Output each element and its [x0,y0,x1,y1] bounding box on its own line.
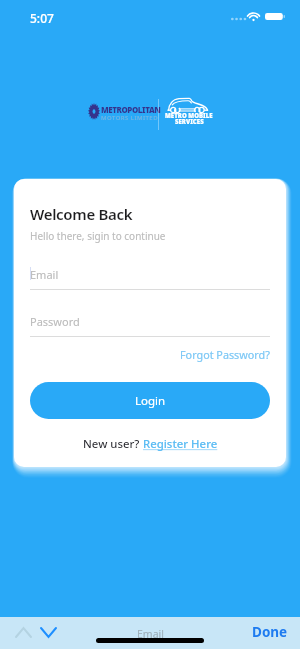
button[interactable]: Previous field [10,621,37,643]
staticText: New user? [83,436,143,452]
button[interactable]: Register Here [143,436,218,452]
staticText: Register Here [143,436,218,452]
button[interactable]: Login [30,382,270,419]
button[interactable]: Forgot Password? [180,347,270,362]
staticText: Hello there, sigin to continue [30,229,166,243]
staticText: Welcome Back [30,204,133,224]
staticText: 5:07 [30,10,54,26]
staticText: Password [30,314,80,329]
staticText: SERVICES [175,118,204,126]
staticText: METRO MOBILE [165,112,213,120]
button[interactable]: Done [251,621,289,643]
button[interactable]: Password [30,314,270,337]
staticText: Email [137,627,164,641]
staticText: Login [135,393,166,409]
staticText: Done [252,623,288,641]
staticText: Forgot Password? [180,347,270,362]
staticText: MOTORS LIMITED [101,114,159,122]
staticText: Email [30,267,59,282]
button[interactable]: Next field [35,621,62,643]
staticText: METROPOLITAN [101,105,161,116]
button[interactable]: Email [30,267,270,290]
